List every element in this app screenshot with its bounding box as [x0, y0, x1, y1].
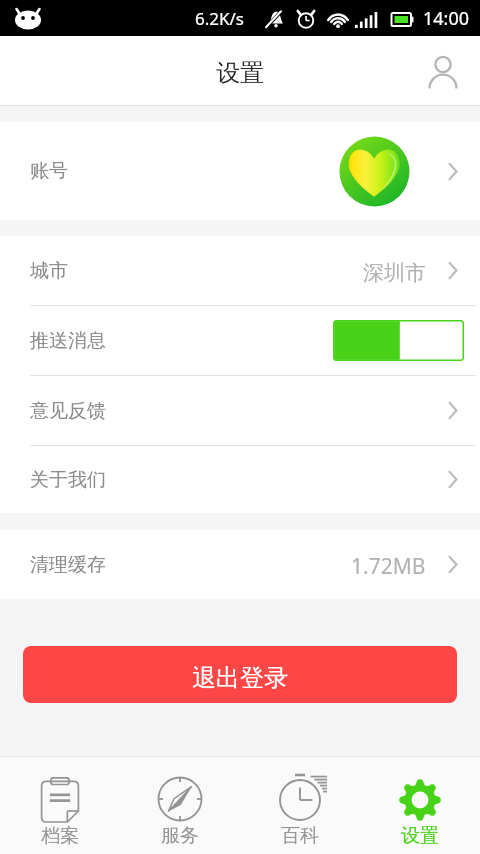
staticText: 14:00	[423, 6, 470, 31]
staticText: 退出登录	[192, 663, 288, 693]
button[interactable]: 退出登录	[23, 646, 457, 703]
staticText: 服务	[161, 824, 199, 848]
button[interactable]: Profile	[419, 49, 469, 99]
button[interactable]: 清理缓存	[0, 530, 480, 599]
button[interactable]: 服务	[120, 757, 240, 854]
staticText: 关于我们	[30, 468, 106, 492]
staticText: 1.72MB	[351, 552, 426, 581]
button[interactable]: Push notifications toggle	[333, 320, 464, 361]
button[interactable]: 关于我们	[0, 446, 480, 513]
button[interactable]: 城市	[0, 236, 480, 305]
button[interactable]: 意见反馈	[0, 376, 480, 445]
button[interactable]: 设置	[360, 757, 480, 854]
staticText: 档案	[41, 824, 79, 848]
staticText: 深圳市	[363, 260, 426, 286]
button[interactable]: 档案	[0, 757, 120, 854]
staticText: 设置	[216, 58, 264, 88]
button[interactable]: 账号	[0, 122, 480, 220]
staticText: 账号	[30, 159, 68, 183]
staticText: 意见反馈	[30, 399, 106, 423]
staticText: 6.2K/s	[195, 7, 244, 30]
staticText: 清理缓存	[30, 553, 106, 577]
button[interactable]: 百科	[240, 757, 360, 854]
staticText: 百科	[281, 824, 319, 848]
staticText: 城市	[30, 259, 68, 283]
staticText: 设置	[401, 824, 439, 848]
staticText: 推送消息	[30, 329, 106, 353]
